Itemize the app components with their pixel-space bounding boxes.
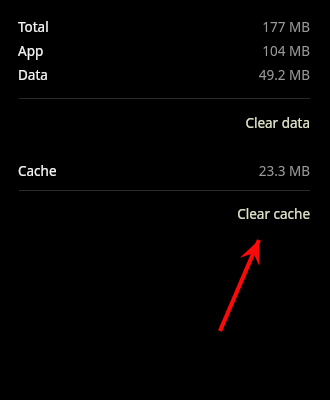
button[interactable]: Clear data bbox=[0, 99, 330, 147]
button[interactable]: Total bbox=[0, 15, 330, 39]
button[interactable]: Data bbox=[0, 63, 330, 87]
staticText: Data bbox=[18, 66, 48, 84]
staticText: 177 MB bbox=[262, 18, 310, 36]
button[interactable]: Clear cache bbox=[0, 191, 330, 237]
staticText: Clear cache bbox=[237, 205, 310, 223]
staticText: Clear data bbox=[245, 114, 310, 132]
staticText: App bbox=[18, 42, 44, 60]
staticText: 104 MB bbox=[262, 42, 310, 60]
button[interactable]: Cache bbox=[0, 157, 330, 185]
staticText: Total bbox=[18, 18, 49, 36]
staticText: Cache bbox=[18, 162, 57, 180]
staticText: 23.3 MB bbox=[258, 162, 310, 180]
staticText: 49.2 MB bbox=[258, 66, 310, 84]
button[interactable]: App bbox=[0, 39, 330, 63]
